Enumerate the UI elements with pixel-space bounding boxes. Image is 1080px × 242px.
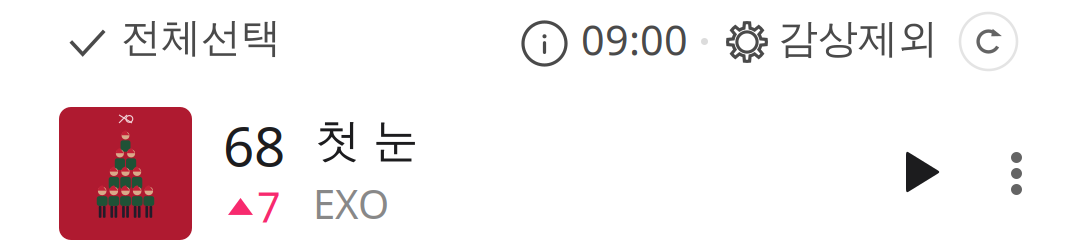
button[interactable]: 09:00 xyxy=(521,0,687,66)
staticText: 전체선택 xyxy=(121,13,281,62)
staticText: 감상제외 xyxy=(778,14,938,63)
staticText: 09:00 xyxy=(581,12,688,67)
button[interactable]: 전체선택 xyxy=(61,0,281,66)
button[interactable]: 더보기 xyxy=(983,134,1050,213)
button[interactable]: 68 xyxy=(0,107,860,242)
button[interactable]: 새로고침 xyxy=(954,7,1023,76)
staticText: 7 xyxy=(257,179,281,234)
staticText: 눈 xyxy=(373,113,418,169)
button[interactable]: 감상제외 xyxy=(726,0,934,66)
button[interactable]: 재생 xyxy=(883,126,962,218)
staticText: EXO xyxy=(313,177,389,230)
staticText: 68 xyxy=(223,109,285,182)
staticText: 첫 xyxy=(315,113,360,169)
